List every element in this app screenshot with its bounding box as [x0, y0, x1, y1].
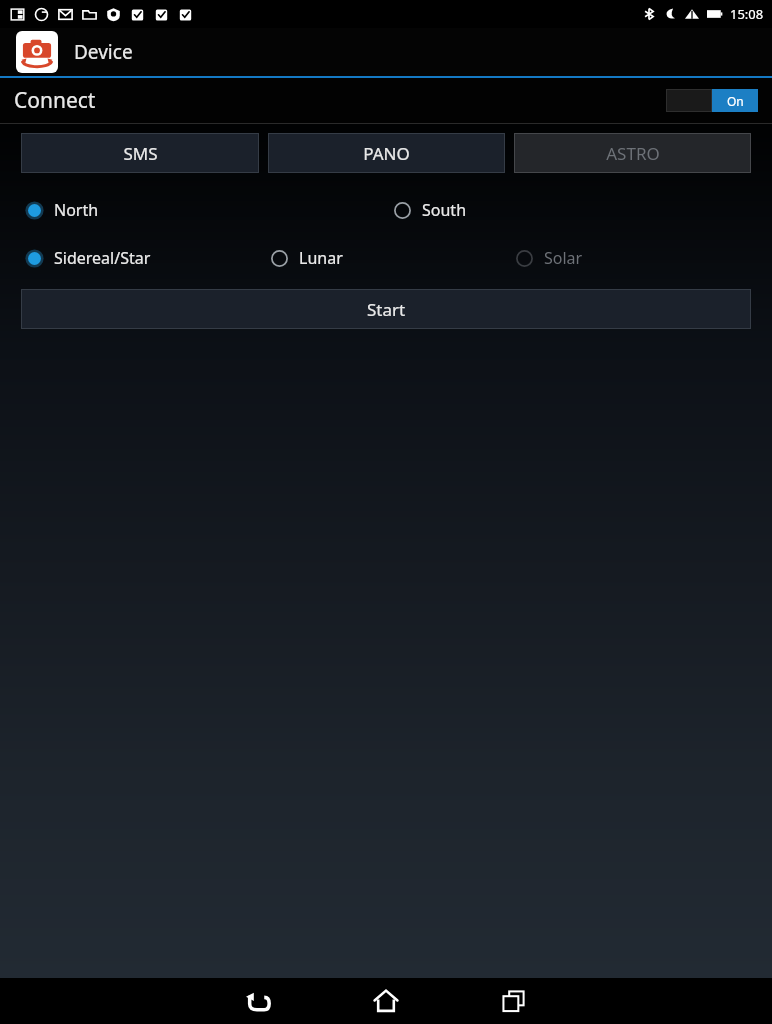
button[interactable]: PANO	[268, 133, 505, 173]
staticText: North	[54, 199, 99, 221]
button[interactable]: ASTRO	[514, 133, 751, 173]
button[interactable]: North	[25, 196, 393, 224]
button[interactable]: Home	[343, 978, 429, 1024]
staticText: Start	[367, 298, 406, 321]
button[interactable]: Recent apps	[471, 978, 557, 1024]
staticText: Solar	[544, 247, 583, 269]
button[interactable]: Start	[21, 289, 751, 329]
staticText: On	[727, 93, 744, 109]
staticText: Device	[74, 39, 133, 65]
staticText: South	[422, 199, 467, 221]
staticText: ASTRO	[606, 142, 660, 165]
button[interactable]: On	[666, 89, 758, 112]
button[interactable]: Solar	[515, 244, 715, 272]
staticText: 15:08	[730, 5, 764, 23]
staticText: Sidereal/Star	[54, 247, 151, 269]
staticText: SMS	[123, 142, 158, 165]
button[interactable]: South	[393, 196, 643, 224]
staticText: Lunar	[299, 247, 343, 269]
button[interactable]: Lunar	[270, 244, 515, 272]
button[interactable]: SMS	[21, 133, 259, 173]
staticText: PANO	[363, 142, 410, 165]
button[interactable]: Back	[215, 978, 301, 1024]
staticText: Connect	[14, 86, 96, 115]
button[interactable]: Sidereal/Star	[25, 244, 270, 272]
